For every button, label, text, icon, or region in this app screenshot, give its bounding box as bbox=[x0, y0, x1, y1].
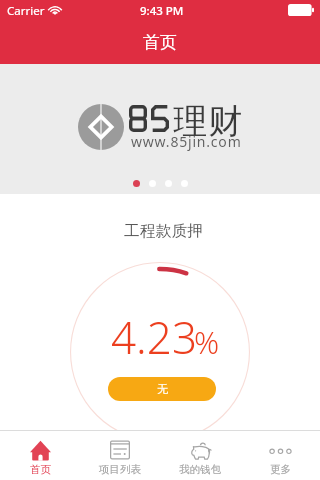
button[interactable]: More bbox=[240, 431, 320, 480]
staticText: Carrier bbox=[7, 3, 45, 19]
staticText: 工程款质押 bbox=[124, 221, 203, 241]
button[interactable]: Home bbox=[0, 431, 80, 480]
staticText: 首页 bbox=[30, 463, 51, 476]
staticText: 首页 bbox=[143, 32, 177, 53]
button[interactable]: Wallet bbox=[160, 431, 240, 480]
staticText: 项目列表 bbox=[99, 463, 141, 476]
staticText: 4.23 bbox=[111, 307, 198, 367]
staticText: 我的钱包 bbox=[179, 463, 221, 476]
staticText: 无 bbox=[157, 382, 168, 396]
staticText: 理财 bbox=[173, 100, 243, 143]
staticText: www.85jin.com bbox=[131, 132, 242, 151]
button[interactable]: Projects bbox=[80, 431, 160, 480]
staticText: 9:43 PM bbox=[140, 3, 184, 19]
staticText: 更多 bbox=[270, 463, 291, 476]
staticText: % bbox=[194, 321, 220, 363]
button[interactable]: 无 bbox=[108, 377, 216, 401]
